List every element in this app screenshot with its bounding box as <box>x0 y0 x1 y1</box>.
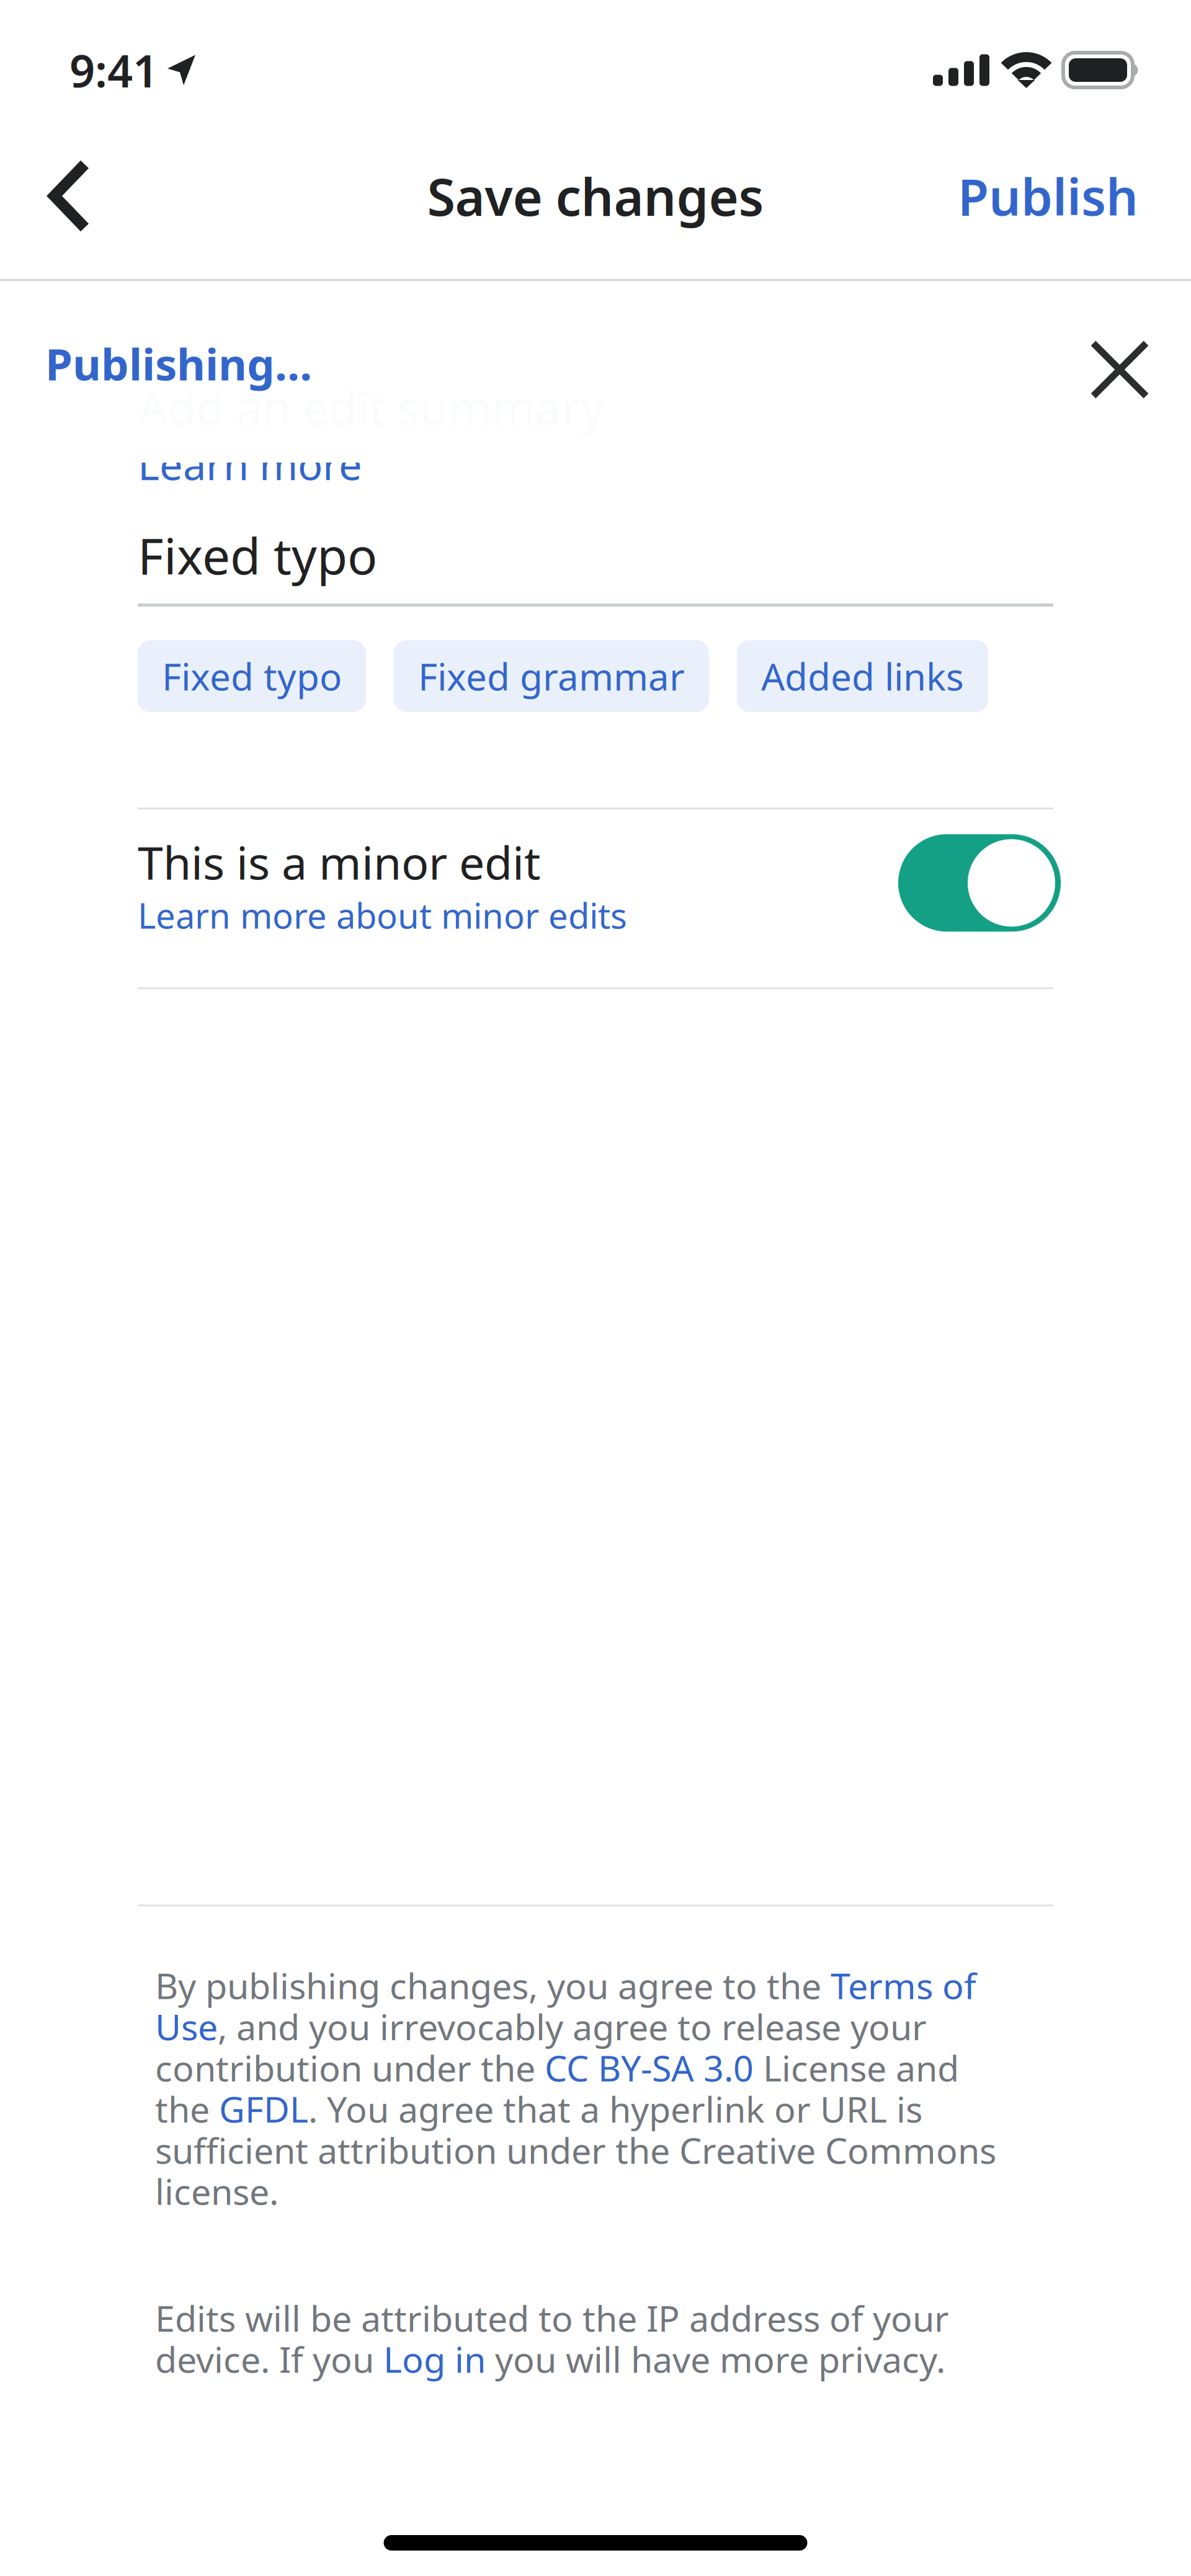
staticText: Added links <box>761 651 964 701</box>
staticText: Learn more about minor edits <box>138 892 627 938</box>
staticText: Edits will be attributed to the IP addre… <box>155 2297 949 2380</box>
button[interactable]: Publish <box>958 113 1191 279</box>
button[interactable]: Fixed grammar <box>394 640 709 712</box>
button[interactable]: Fixed typo <box>138 640 366 712</box>
button[interactable]: Learn more about minor edits <box>138 892 627 938</box>
staticText: Publishing… <box>45 334 312 392</box>
staticText: Learn more <box>138 437 362 491</box>
button[interactable]: Back <box>17 113 122 279</box>
staticText: By publishing changes, you agree to the … <box>155 1965 996 2212</box>
staticText: 9:41 <box>69 40 158 100</box>
button[interactable]: This is a minor edit <box>898 834 1061 932</box>
button[interactable]: Added links <box>737 640 988 712</box>
staticText: Add an edit summary <box>138 376 604 438</box>
staticText: Fixed typo <box>162 651 342 701</box>
staticText: This is a minor edit <box>138 832 540 892</box>
button[interactable]: Close <box>1079 322 1161 404</box>
staticText: Publish <box>958 162 1138 229</box>
staticText: Fixed typo <box>138 522 377 588</box>
staticText: Save changes <box>427 162 764 230</box>
staticText: Fixed grammar <box>418 651 685 701</box>
